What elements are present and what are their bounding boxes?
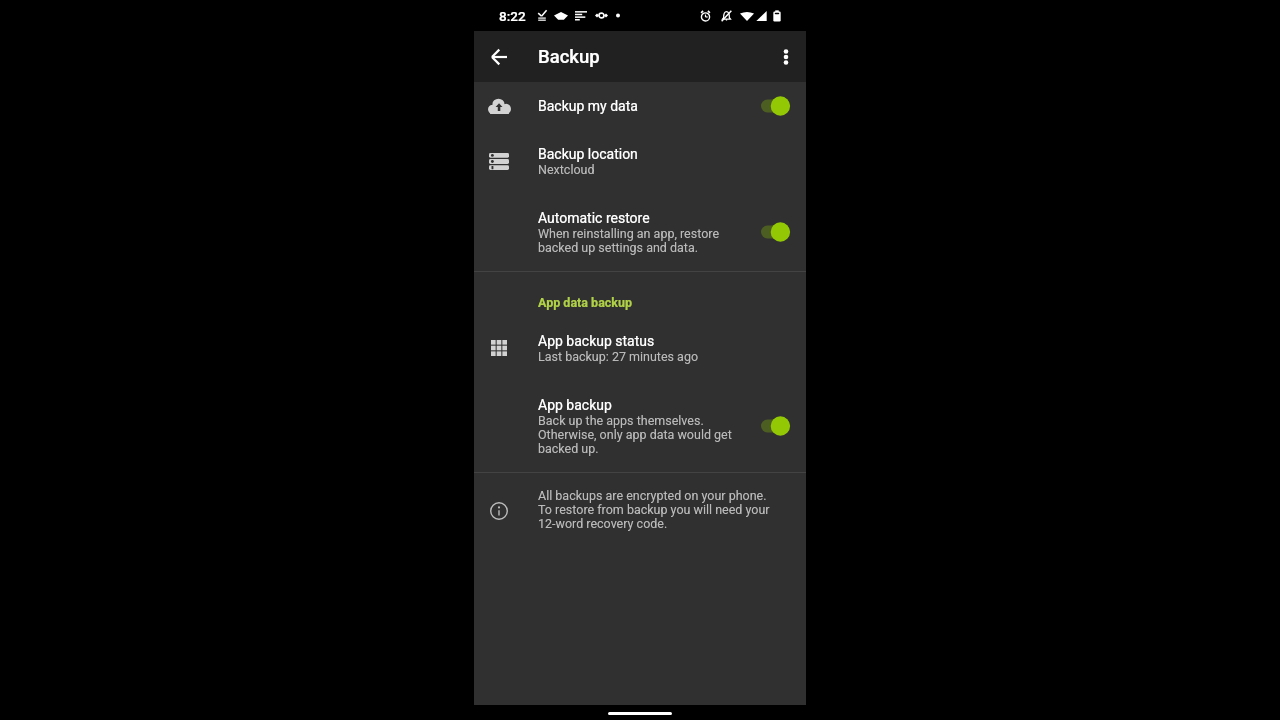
staticText: App data backup xyxy=(538,295,633,310)
button[interactable]: Automatic restore, on xyxy=(759,221,794,243)
staticText: Back up the apps themselves. Otherwise, … xyxy=(538,414,732,456)
button[interactable]: App backup status xyxy=(474,316,806,380)
staticText: Nextcloud xyxy=(538,163,595,177)
staticText: Backup my data xyxy=(538,97,638,115)
button[interactable]: App backup, on xyxy=(759,415,794,437)
staticText: All backups are encrypted on your phone.… xyxy=(538,489,770,531)
staticText: Backup location xyxy=(538,145,638,163)
staticText: When reinstalling an app, restore backed… xyxy=(538,227,720,255)
button[interactable]: Backup my data, on xyxy=(759,95,794,117)
button[interactable]: Navigate up xyxy=(474,31,523,82)
button[interactable]: More options xyxy=(766,31,806,82)
staticText: App backup xyxy=(538,396,612,414)
staticText: Last backup: 27 minutes ago xyxy=(538,350,699,364)
staticText: 8:22 xyxy=(499,8,526,24)
button[interactable]: Automatic restore xyxy=(474,193,806,271)
button[interactable]: App backup xyxy=(474,380,806,472)
button[interactable]: Backup location xyxy=(474,129,806,193)
staticText: Automatic restore xyxy=(538,209,650,227)
staticText: App backup status xyxy=(538,332,655,350)
staticText: Backup xyxy=(538,46,600,68)
button[interactable]: Backup my data xyxy=(474,82,806,129)
